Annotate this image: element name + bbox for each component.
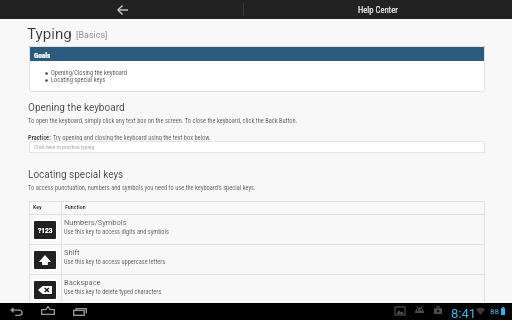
staticText: Backspace — [64, 278, 101, 287]
staticText: Opening the keyboard — [28, 102, 125, 114]
button[interactable]: Home — [35, 303, 61, 320]
button[interactable]: Help Center — [330, 0, 426, 19]
staticText: Numbers/Symbols — [64, 218, 127, 227]
staticText: Use this key to access uppercase letters — [64, 258, 166, 266]
staticText: To open the keyboard, simply click any t… — [28, 117, 298, 125]
button[interactable]: Recent apps — [67, 303, 93, 320]
staticText: Function — [65, 203, 86, 210]
staticText: [Basics] — [76, 30, 108, 41]
button[interactable]: Click here to practice typing — [29, 141, 485, 153]
button[interactable]: Backspace — [29, 275, 485, 304]
staticText: ?123 — [38, 226, 53, 235]
staticText: Shift — [64, 248, 80, 257]
button[interactable]: Shift — [29, 245, 485, 274]
staticText: Practice: — [28, 134, 51, 142]
staticText: Locating special keys — [28, 169, 124, 181]
button[interactable]: Back — [100, 0, 144, 19]
button[interactable]: ?123 — [29, 215, 485, 244]
staticText: 88 — [490, 307, 499, 316]
staticText: Opening/Closing the keyboard — [51, 69, 127, 77]
staticText: Try opening and closing the keyboard usi… — [53, 134, 211, 142]
staticText: To access punctuation, numbers and symbo… — [28, 184, 256, 192]
staticText: Help Center — [358, 5, 398, 15]
staticText: 8:41 — [451, 306, 477, 320]
staticText: Goals — [34, 51, 51, 59]
staticText: Click here to practice typing — [34, 144, 95, 150]
staticText: Use this key to delete typed characters — [64, 288, 162, 296]
button[interactable]: Back — [3, 303, 29, 320]
staticText: Typing — [27, 25, 72, 43]
staticText: Key — [33, 203, 42, 210]
staticText: Locating special keys — [51, 76, 106, 84]
staticText: Use this key to access digits and symbol… — [64, 228, 169, 236]
